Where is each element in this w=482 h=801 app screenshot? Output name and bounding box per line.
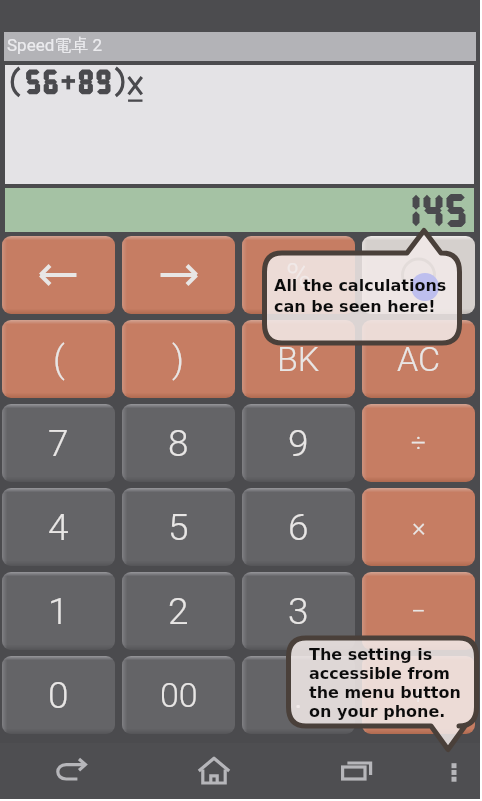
staticText: 8 — [168, 422, 189, 465]
staticText: % — [286, 255, 312, 295]
button[interactable]: 3 — [242, 572, 355, 650]
button[interactable]: 00 — [122, 656, 235, 734]
staticText: ( — [53, 338, 65, 381]
staticText: 0 — [48, 674, 69, 717]
button[interactable]: Move cursor right — [122, 236, 235, 314]
staticText: 7 — [48, 422, 69, 465]
button[interactable]: Home — [142, 743, 285, 799]
staticText: 6 — [288, 506, 309, 549]
staticText: can be seen here! — [274, 297, 436, 316]
staticText: BK — [277, 339, 320, 379]
staticText: The setting is — [309, 645, 433, 664]
button[interactable]: 4 — [2, 488, 115, 566]
staticText: 1 — [48, 590, 69, 633]
staticText: 4 — [48, 506, 69, 549]
staticText: accessible from — [309, 664, 451, 683]
staticText: 3 — [288, 590, 309, 633]
staticText: AC — [397, 339, 441, 379]
button[interactable]: 2 — [122, 572, 235, 650]
staticText: + — [411, 680, 426, 710]
button[interactable]: 8 — [122, 404, 235, 482]
button[interactable]: 9 — [242, 404, 355, 482]
staticText: − — [411, 596, 426, 626]
staticText: the menu button — [309, 683, 461, 702]
staticText: ) — [172, 338, 185, 381]
staticText: × — [412, 512, 426, 542]
button[interactable]: 1 — [2, 572, 115, 650]
button[interactable]: + — [362, 656, 475, 734]
button[interactable]: ÷ — [362, 404, 475, 482]
staticText: 9 — [288, 422, 309, 465]
button[interactable]: 0 — [2, 656, 115, 734]
button[interactable]: × — [362, 488, 475, 566]
button[interactable]: Move cursor left — [2, 236, 115, 314]
button[interactable]: 7 — [2, 404, 115, 482]
staticText: Speed電卓 2 — [7, 35, 103, 56]
button[interactable]: History — [362, 236, 475, 314]
button[interactable]: ( — [2, 320, 115, 398]
staticText: 2 — [168, 590, 189, 633]
button[interactable]: % — [242, 236, 355, 314]
button[interactable]: . — [242, 656, 355, 734]
staticText: 5 — [168, 506, 189, 549]
staticText: ÷ — [411, 428, 426, 458]
button[interactable]: 6 — [242, 488, 355, 566]
button[interactable]: Back — [0, 743, 142, 799]
button[interactable]: Recent apps — [285, 743, 428, 799]
staticText: on your phone. — [309, 702, 446, 721]
button[interactable]: − — [362, 572, 475, 650]
button[interactable]: BK — [242, 320, 355, 398]
button[interactable]: 5 — [122, 488, 235, 566]
staticText: 00 — [160, 675, 198, 715]
staticText: All the calculations — [274, 276, 447, 295]
button[interactable]: AC — [362, 320, 475, 398]
button[interactable]: ) — [122, 320, 235, 398]
button[interactable]: More options — [428, 743, 480, 799]
